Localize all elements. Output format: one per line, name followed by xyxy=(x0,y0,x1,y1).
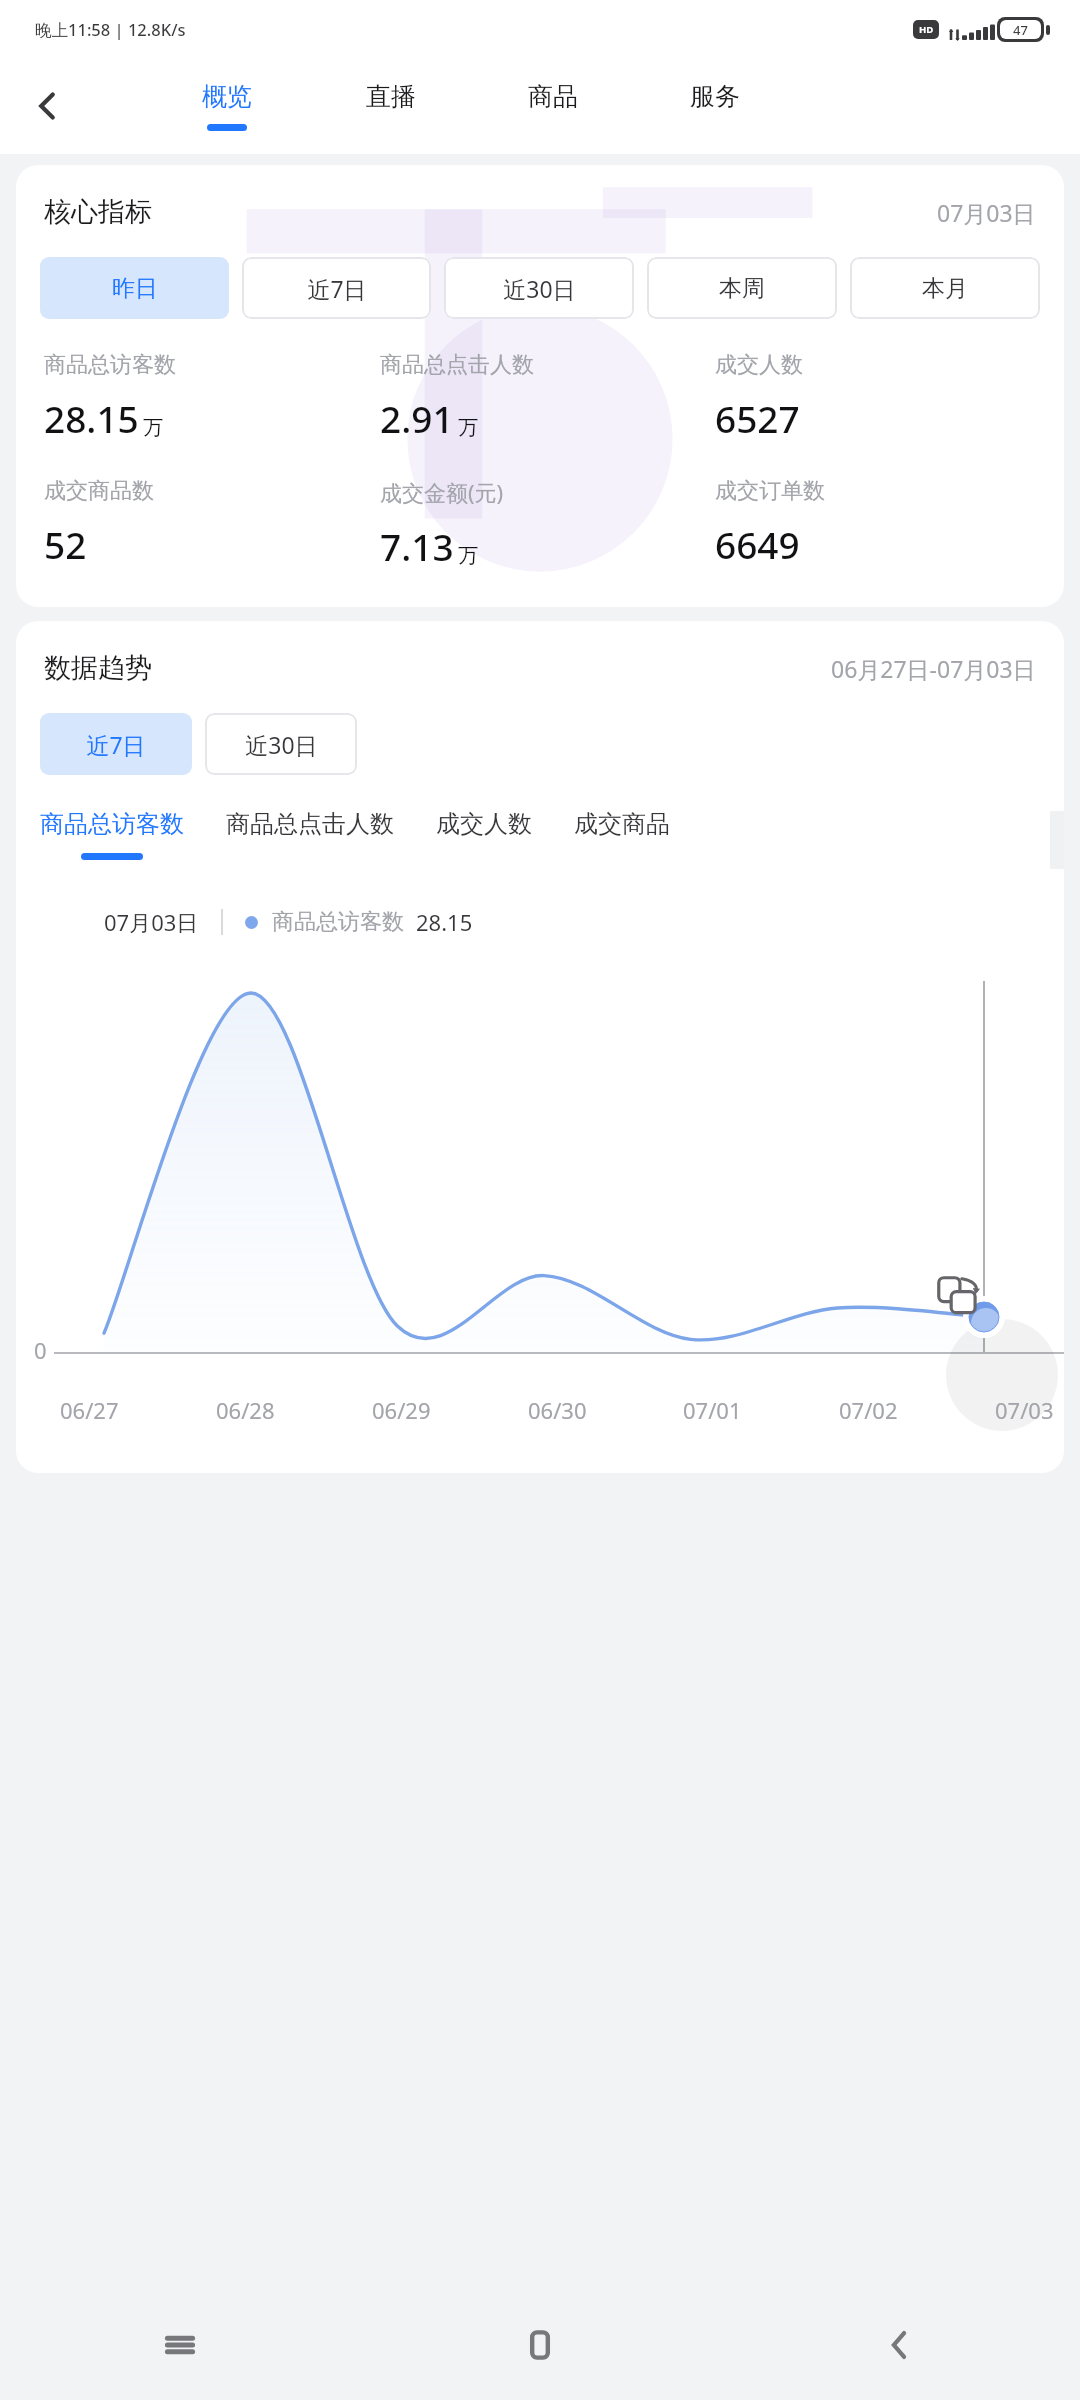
button[interactable]: 商品总点击人数 xyxy=(226,809,394,860)
staticText: 商品总点击人数 xyxy=(226,809,394,839)
staticText: 52 xyxy=(44,519,87,569)
staticText: 06/30 xyxy=(528,1395,587,1425)
button[interactable]: 成交商品 xyxy=(574,809,670,860)
staticText: 07/03 xyxy=(995,1395,1054,1425)
button[interactable]: 直播 xyxy=(360,77,422,135)
button[interactable]: 概览 xyxy=(196,77,258,135)
staticText: 直播 xyxy=(366,81,416,112)
staticText: 07月03日 xyxy=(937,197,1036,228)
staticText: 47 xyxy=(1013,21,1028,39)
button[interactable]: Back xyxy=(720,2290,1080,2400)
staticText: 万 xyxy=(458,543,478,568)
staticText: 06/27 xyxy=(60,1395,119,1425)
staticText: 07/01 xyxy=(683,1395,742,1425)
button[interactable]: Home xyxy=(360,2290,720,2400)
staticText: 商品总访客数 xyxy=(40,809,184,839)
staticText: 昨日 xyxy=(112,274,158,303)
staticText: 2.91 xyxy=(380,393,454,443)
staticText: 本周 xyxy=(719,274,765,303)
staticText: 本月 xyxy=(922,274,968,303)
staticText: 概览 xyxy=(202,81,252,112)
staticText: 服务 xyxy=(690,81,740,112)
staticText: 28.15 xyxy=(416,907,473,937)
staticText: 万 xyxy=(143,415,163,440)
staticText: 万 xyxy=(458,415,478,440)
staticText: 近30日 xyxy=(245,729,318,760)
staticText: 核心指标 xyxy=(44,195,152,229)
staticText: 数据趋势 xyxy=(44,651,152,685)
staticText: 商品 xyxy=(528,81,578,112)
staticText: 06/28 xyxy=(216,1395,275,1425)
button[interactable]: Recents xyxy=(0,2290,360,2400)
button[interactable]: 近7日 xyxy=(242,257,431,319)
staticText: 商品总点击人数 xyxy=(380,351,534,379)
button[interactable]: 近7日 xyxy=(40,713,192,775)
staticText: 06/29 xyxy=(372,1395,431,1425)
staticText: 近30日 xyxy=(503,273,576,304)
staticText: 0 xyxy=(34,1335,47,1365)
button[interactable]: 本月 xyxy=(850,257,1040,319)
staticText: 07月03日 xyxy=(104,907,199,937)
staticText: 商品总访客数 xyxy=(44,351,176,379)
staticText: 晚上11:58 | 12.8K/s xyxy=(35,18,186,41)
staticText: 06月27日-07月03日 xyxy=(831,653,1036,684)
staticText: 近7日 xyxy=(307,273,367,304)
staticText: 商品总访客数 xyxy=(272,908,404,936)
staticText: 成交人数 xyxy=(715,351,803,379)
button[interactable]: 近30日 xyxy=(444,257,634,319)
button[interactable]: 近30日 xyxy=(205,713,357,775)
staticText: 28.15 xyxy=(44,393,139,443)
button[interactable]: 商品总访客数 xyxy=(40,809,184,860)
button[interactable]: 本周 xyxy=(647,257,837,319)
staticText: 7.13 xyxy=(380,521,454,571)
staticText: 成交人数 xyxy=(436,809,532,839)
button[interactable]: Rotate screen xyxy=(930,1269,988,1327)
staticText: 近7日 xyxy=(86,729,146,760)
button[interactable]: 服务 xyxy=(684,77,746,135)
button[interactable]: 昨日 xyxy=(40,257,229,319)
staticText: 成交订单数 xyxy=(715,477,825,505)
staticText: HD xyxy=(919,23,934,36)
staticText: 成交商品 xyxy=(574,809,670,839)
button[interactable]: Back xyxy=(20,78,76,134)
staticText: 6527 xyxy=(715,393,800,443)
staticText: 6649 xyxy=(715,519,800,569)
staticText: 成交商品数 xyxy=(44,477,154,505)
button[interactable]: 商品 xyxy=(522,77,584,135)
staticText: 成交金额(元) xyxy=(380,477,504,507)
button[interactable]: 成交人数 xyxy=(436,809,532,860)
staticText: 07/02 xyxy=(839,1395,898,1425)
